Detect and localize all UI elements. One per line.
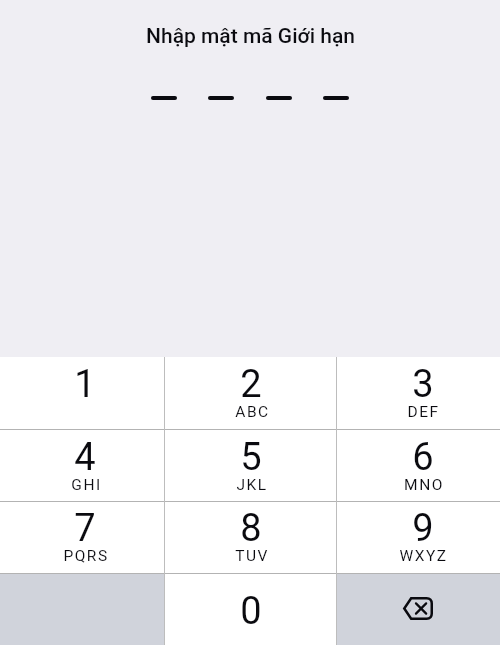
staticText: JKL <box>236 476 268 494</box>
staticText: 8 <box>240 506 262 551</box>
staticText: WXYZ <box>399 547 448 565</box>
staticText: MNO <box>404 476 444 494</box>
button[interactable]: 2 <box>165 357 337 430</box>
button[interactable]: 8 <box>165 501 337 573</box>
staticText: ABC <box>235 403 270 421</box>
staticText: 4 <box>74 435 96 480</box>
staticText: 1 <box>74 362 96 407</box>
button[interactable]: 3 <box>337 357 500 430</box>
staticText: 2 <box>240 362 262 407</box>
staticText: GHI <box>71 476 102 494</box>
staticText: 0 <box>240 589 262 634</box>
button[interactable]: 7 <box>0 501 164 573</box>
staticText: 7 <box>74 506 96 551</box>
staticText: DEF <box>407 403 440 421</box>
staticText: PQRS <box>63 547 109 565</box>
staticText: Nhập mật mã Giới hạn <box>146 24 355 49</box>
staticText: 9 <box>412 506 434 551</box>
staticText: 6 <box>412 435 434 480</box>
button[interactable]: 6 <box>337 430 500 502</box>
staticText: TUV <box>235 547 269 565</box>
button[interactable]: 4 <box>0 430 164 502</box>
button[interactable]: 1 <box>0 357 164 430</box>
button[interactable]: 0 <box>165 573 337 645</box>
button[interactable]: 5 <box>165 430 337 502</box>
staticText: 5 <box>240 435 262 480</box>
button[interactable]: Delete <box>337 573 500 645</box>
button[interactable]: 9 <box>337 501 500 573</box>
staticText: 3 <box>412 362 434 407</box>
